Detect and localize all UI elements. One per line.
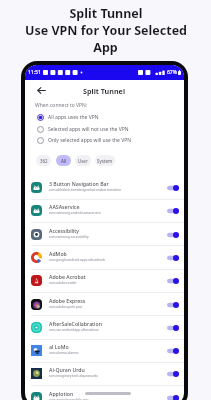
- staticText: Al-Quran Urdu: [49, 366, 85, 373]
- button[interactable]: System: [95, 155, 115, 166]
- staticText: com.adobe.spark.post: [49, 305, 83, 309]
- staticText: 3 Button Navigation Bar: [49, 180, 109, 187]
- staticText: AfterSaleCollabration: [49, 320, 102, 327]
- staticText: When connect to VPN:: [35, 102, 88, 109]
- staticText: 362: [40, 158, 48, 164]
- staticText: System: [97, 158, 113, 164]
- button[interactable]: User: [75, 155, 91, 166]
- staticText: com.sec.android.app.aftersalesvc: [49, 328, 99, 332]
- staticText: Split Tunnel: [69, 5, 143, 22]
- staticText: AASAservice: [49, 203, 80, 210]
- staticText: al LoMo: [49, 343, 69, 350]
- button[interactable]: Adobe Express: [25, 293, 184, 316]
- staticText: App: [93, 39, 118, 56]
- staticText: Applotion: [49, 390, 74, 397]
- button[interactable]: All apps uses the VPN: [25, 112, 184, 123]
- staticText: Use VPN for Your Selected: [25, 22, 187, 39]
- staticText: com.imaginary.tech.alquranurdu: [49, 374, 99, 378]
- staticText: com.samsung.accessibility: [49, 235, 89, 239]
- button[interactable]: 362: [36, 155, 51, 166]
- button[interactable]: AASAservice: [25, 199, 184, 222]
- staticText: com.applotion.mobile.app: [49, 398, 89, 400]
- staticText: com.alarmo.alarmo: [49, 351, 79, 355]
- button[interactable]: AdMob: [25, 246, 184, 269]
- staticText: User: [78, 158, 88, 164]
- staticText: com.google.android.apps.ads.admob: [49, 258, 105, 262]
- staticText: Accessibility: [49, 227, 80, 234]
- staticText: Adobe Acrobat: [49, 273, 86, 280]
- button[interactable]: Selected apps will not use the VPN: [25, 124, 184, 135]
- button[interactable]: Only selected apps will use the VPN: [25, 135, 184, 146]
- staticText: All: [61, 158, 67, 164]
- staticText: com.abhishek.itemdesignerbar.navbar.tran…: [49, 188, 122, 192]
- button[interactable]: AfterSaleCollabration: [25, 316, 184, 339]
- staticText: Selected apps will not use the VPN: [48, 126, 129, 133]
- staticText: com.adobe.reader: [49, 281, 77, 285]
- staticText: AdMob: [49, 250, 67, 257]
- button[interactable]: Applotion: [25, 386, 184, 400]
- staticText: Split Tunnel: [83, 86, 126, 96]
- staticText: 67%: [167, 69, 177, 76]
- staticText: Only selected apps will use the VPN: [48, 137, 132, 144]
- button[interactable]: Adobe Acrobat: [25, 269, 184, 292]
- button[interactable]: Accessibility: [25, 223, 184, 246]
- staticText: com.samsung.android.aasaservice: [49, 211, 101, 215]
- staticText: 11:51: [28, 69, 41, 76]
- staticText: All apps uses the VPN: [48, 114, 99, 121]
- button[interactable]: Al-Quran Urdu: [25, 362, 184, 385]
- button[interactable]: al LoMo: [25, 339, 184, 362]
- staticText: Adobe Express: [49, 297, 86, 304]
- button[interactable]: All: [56, 155, 71, 166]
- button[interactable]: Back: [31, 80, 51, 100]
- button[interactable]: 3 Button Navigation Bar: [25, 176, 184, 199]
